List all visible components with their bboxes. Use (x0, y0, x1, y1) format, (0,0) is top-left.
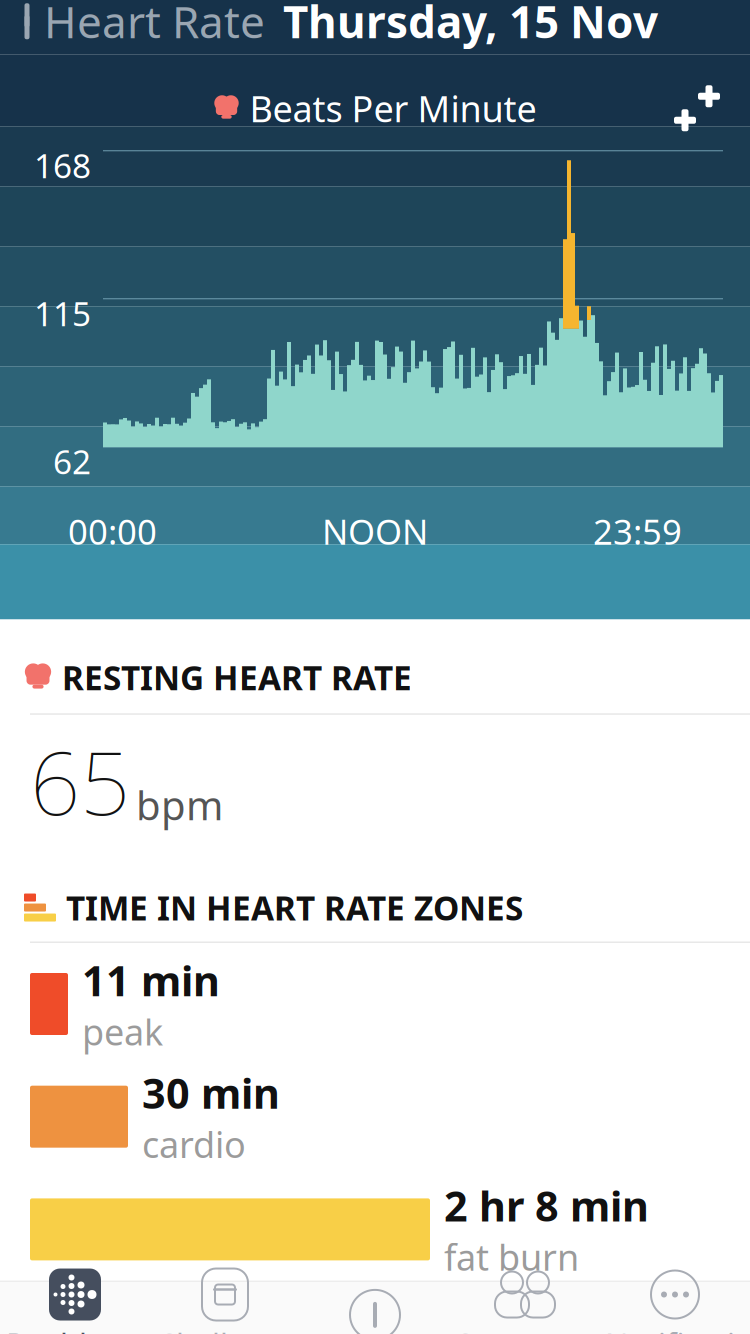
staticText: 11 min (82, 953, 220, 1008)
staticText: RESTING HEART RATE (62, 655, 412, 700)
button[interactable]: Heart Rate (0, 0, 265, 56)
staticText: 65 (30, 722, 130, 839)
staticText: 00:00 (68, 508, 157, 554)
staticText: 23:59 (593, 508, 682, 554)
button[interactable]: Expand chart (664, 75, 730, 141)
staticText: Thursday, 15 Nov (283, 0, 658, 50)
staticText: NOON (322, 508, 428, 554)
staticText: 115 (34, 291, 91, 335)
staticText: Heart Rate (44, 0, 265, 50)
staticText: 168 (34, 143, 91, 187)
staticText: Beats Per Minute (249, 84, 536, 132)
staticText: fat burn (444, 1233, 579, 1281)
button[interactable]: Community (450, 1284, 600, 1334)
staticText: Challenges (157, 1323, 293, 1334)
button[interactable]: Guidance (300, 1284, 450, 1334)
staticText: cardio (142, 1120, 246, 1168)
staticText: Dashboard (6, 1323, 144, 1334)
staticText: 2 hr 8 min (444, 1178, 649, 1233)
staticText: 30 min (142, 1065, 280, 1120)
button[interactable]: Notifications (600, 1284, 750, 1334)
staticText: peak (82, 1007, 163, 1055)
button[interactable]: Dashboard (0, 1284, 150, 1334)
staticText: Notifications (605, 1323, 745, 1334)
staticText: TIME IN HEART RATE ZONES (66, 885, 523, 930)
button[interactable]: Challenges (150, 1284, 300, 1334)
staticText: 62 (53, 439, 91, 483)
staticText: bpm (136, 778, 223, 831)
